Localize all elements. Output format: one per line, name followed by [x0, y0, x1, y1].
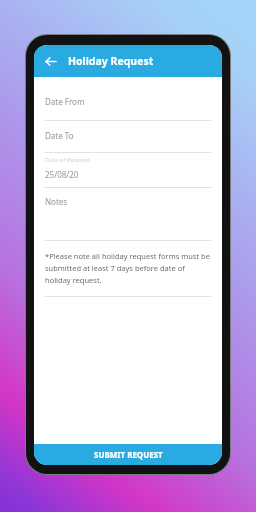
staticText: Date To [45, 130, 74, 141]
button[interactable]: Date To [45, 130, 211, 153]
staticText: Date From [45, 96, 85, 107]
button[interactable]: Notes [45, 196, 68, 207]
staticText: Date of Request [45, 156, 91, 164]
button[interactable]: Back [41, 52, 59, 70]
staticText: 25/08/20 [45, 169, 79, 180]
staticText: SUBMIT REQUEST [94, 449, 163, 460]
staticText: *Please note all holiday request forms m… [45, 251, 211, 286]
staticText: Holiday Request [68, 54, 154, 68]
button[interactable]: Date From [45, 96, 211, 121]
button[interactable]: SUBMIT REQUEST [34, 444, 222, 465]
